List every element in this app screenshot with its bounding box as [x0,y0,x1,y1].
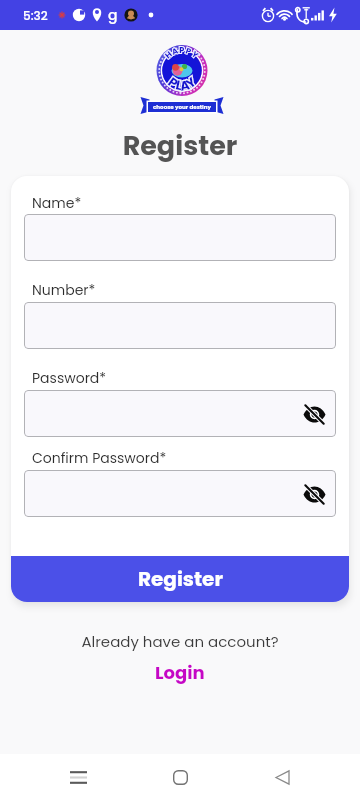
staticText: Register [0,127,360,165]
button[interactable]: Show password [24,470,336,517]
staticText: Already have an account? [0,631,360,652]
button[interactable] [24,302,336,349]
staticText: Number* [32,280,96,300]
button[interactable] [24,214,336,261]
staticText: Password* [32,368,107,388]
staticText: Register [138,565,223,593]
button[interactable]: Register [11,556,349,602]
button[interactable]: Back [258,754,306,800]
button[interactable]: Show password [24,390,336,437]
staticText: 5:32 [23,7,48,24]
staticText: choose your destiny [148,103,216,111]
staticText: g [108,5,118,25]
staticText: Name* [32,193,82,213]
staticText: Confirm Password* [32,448,167,468]
button[interactable]: Home [156,754,204,800]
button[interactable]: Recent apps [54,754,102,800]
staticText: Login [155,660,205,685]
button[interactable]: Show password [301,401,327,427]
button[interactable]: Show password [301,481,327,507]
button[interactable]: Login [141,658,219,687]
